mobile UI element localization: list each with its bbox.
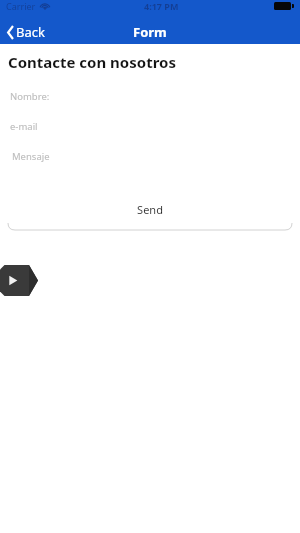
button[interactable]: Mensaje [0,146,300,166]
button[interactable]: Play [0,265,38,296]
staticText: Form [133,23,167,41]
staticText: e-mail [10,120,38,133]
button[interactable]: Nombre: [0,86,300,106]
staticText: Back [16,23,45,41]
button[interactable]: Back [0,21,55,43]
staticText: 4:17 PM [144,0,179,12]
button[interactable]: Send [0,202,300,231]
button[interactable]: e-mail [0,116,300,136]
staticText: Carrier [6,0,36,12]
staticText: Nombre: [10,90,50,103]
staticText: Send [0,202,300,217]
staticText: Contacte con nosotros [8,52,176,72]
staticText: Mensaje [12,150,50,163]
